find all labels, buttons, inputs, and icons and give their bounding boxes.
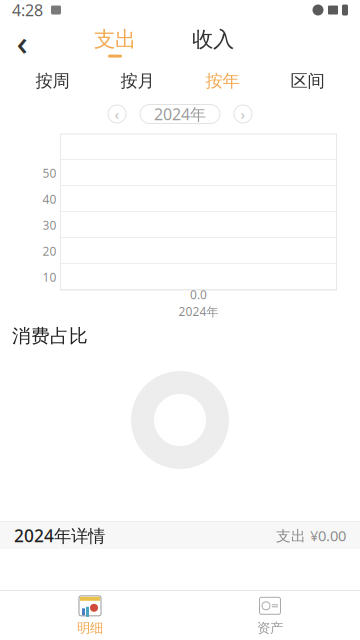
button[interactable]: 按周: [10, 64, 95, 98]
button[interactable]: Previous year: [108, 105, 126, 123]
button[interactable]: Next year: [234, 105, 252, 123]
staticText: 2024年详情: [14, 524, 105, 547]
staticText: 10: [42, 269, 56, 285]
staticText: 消费占比: [12, 324, 88, 347]
staticText: 20: [42, 243, 56, 259]
button[interactable]: 支出: [80, 20, 150, 64]
staticText: 按年: [205, 70, 239, 92]
button[interactable]: 资产: [180, 591, 360, 640]
staticText: 支出: [94, 26, 136, 53]
button[interactable]: 按年: [180, 64, 265, 98]
staticText: 按周: [35, 70, 69, 92]
button[interactable]: 2024年: [140, 104, 220, 123]
staticText: ‹: [114, 104, 119, 124]
staticText: 按月: [120, 70, 154, 92]
button[interactable]: Back: [0, 20, 44, 64]
staticText: 支出 ¥0.00: [276, 526, 346, 545]
staticText: 资产: [257, 620, 283, 636]
staticText: 收入: [192, 26, 234, 53]
button[interactable]: 收入: [178, 20, 248, 64]
staticText: 30: [42, 217, 56, 233]
button[interactable]: 按月: [95, 64, 180, 98]
button[interactable]: 区间: [265, 64, 350, 98]
staticText: ›: [240, 104, 245, 124]
button[interactable]: 明细: [0, 591, 180, 640]
staticText: 40: [42, 191, 56, 207]
staticText: 0.0: [190, 287, 207, 302]
staticText: 区间: [290, 70, 324, 92]
staticText: 明细: [77, 620, 103, 636]
staticText: ‹: [16, 19, 27, 65]
staticText: 2024年: [178, 303, 218, 319]
staticText: 4:28: [12, 0, 43, 21]
staticText: 2024年: [154, 103, 206, 125]
staticText: 50: [42, 165, 56, 181]
